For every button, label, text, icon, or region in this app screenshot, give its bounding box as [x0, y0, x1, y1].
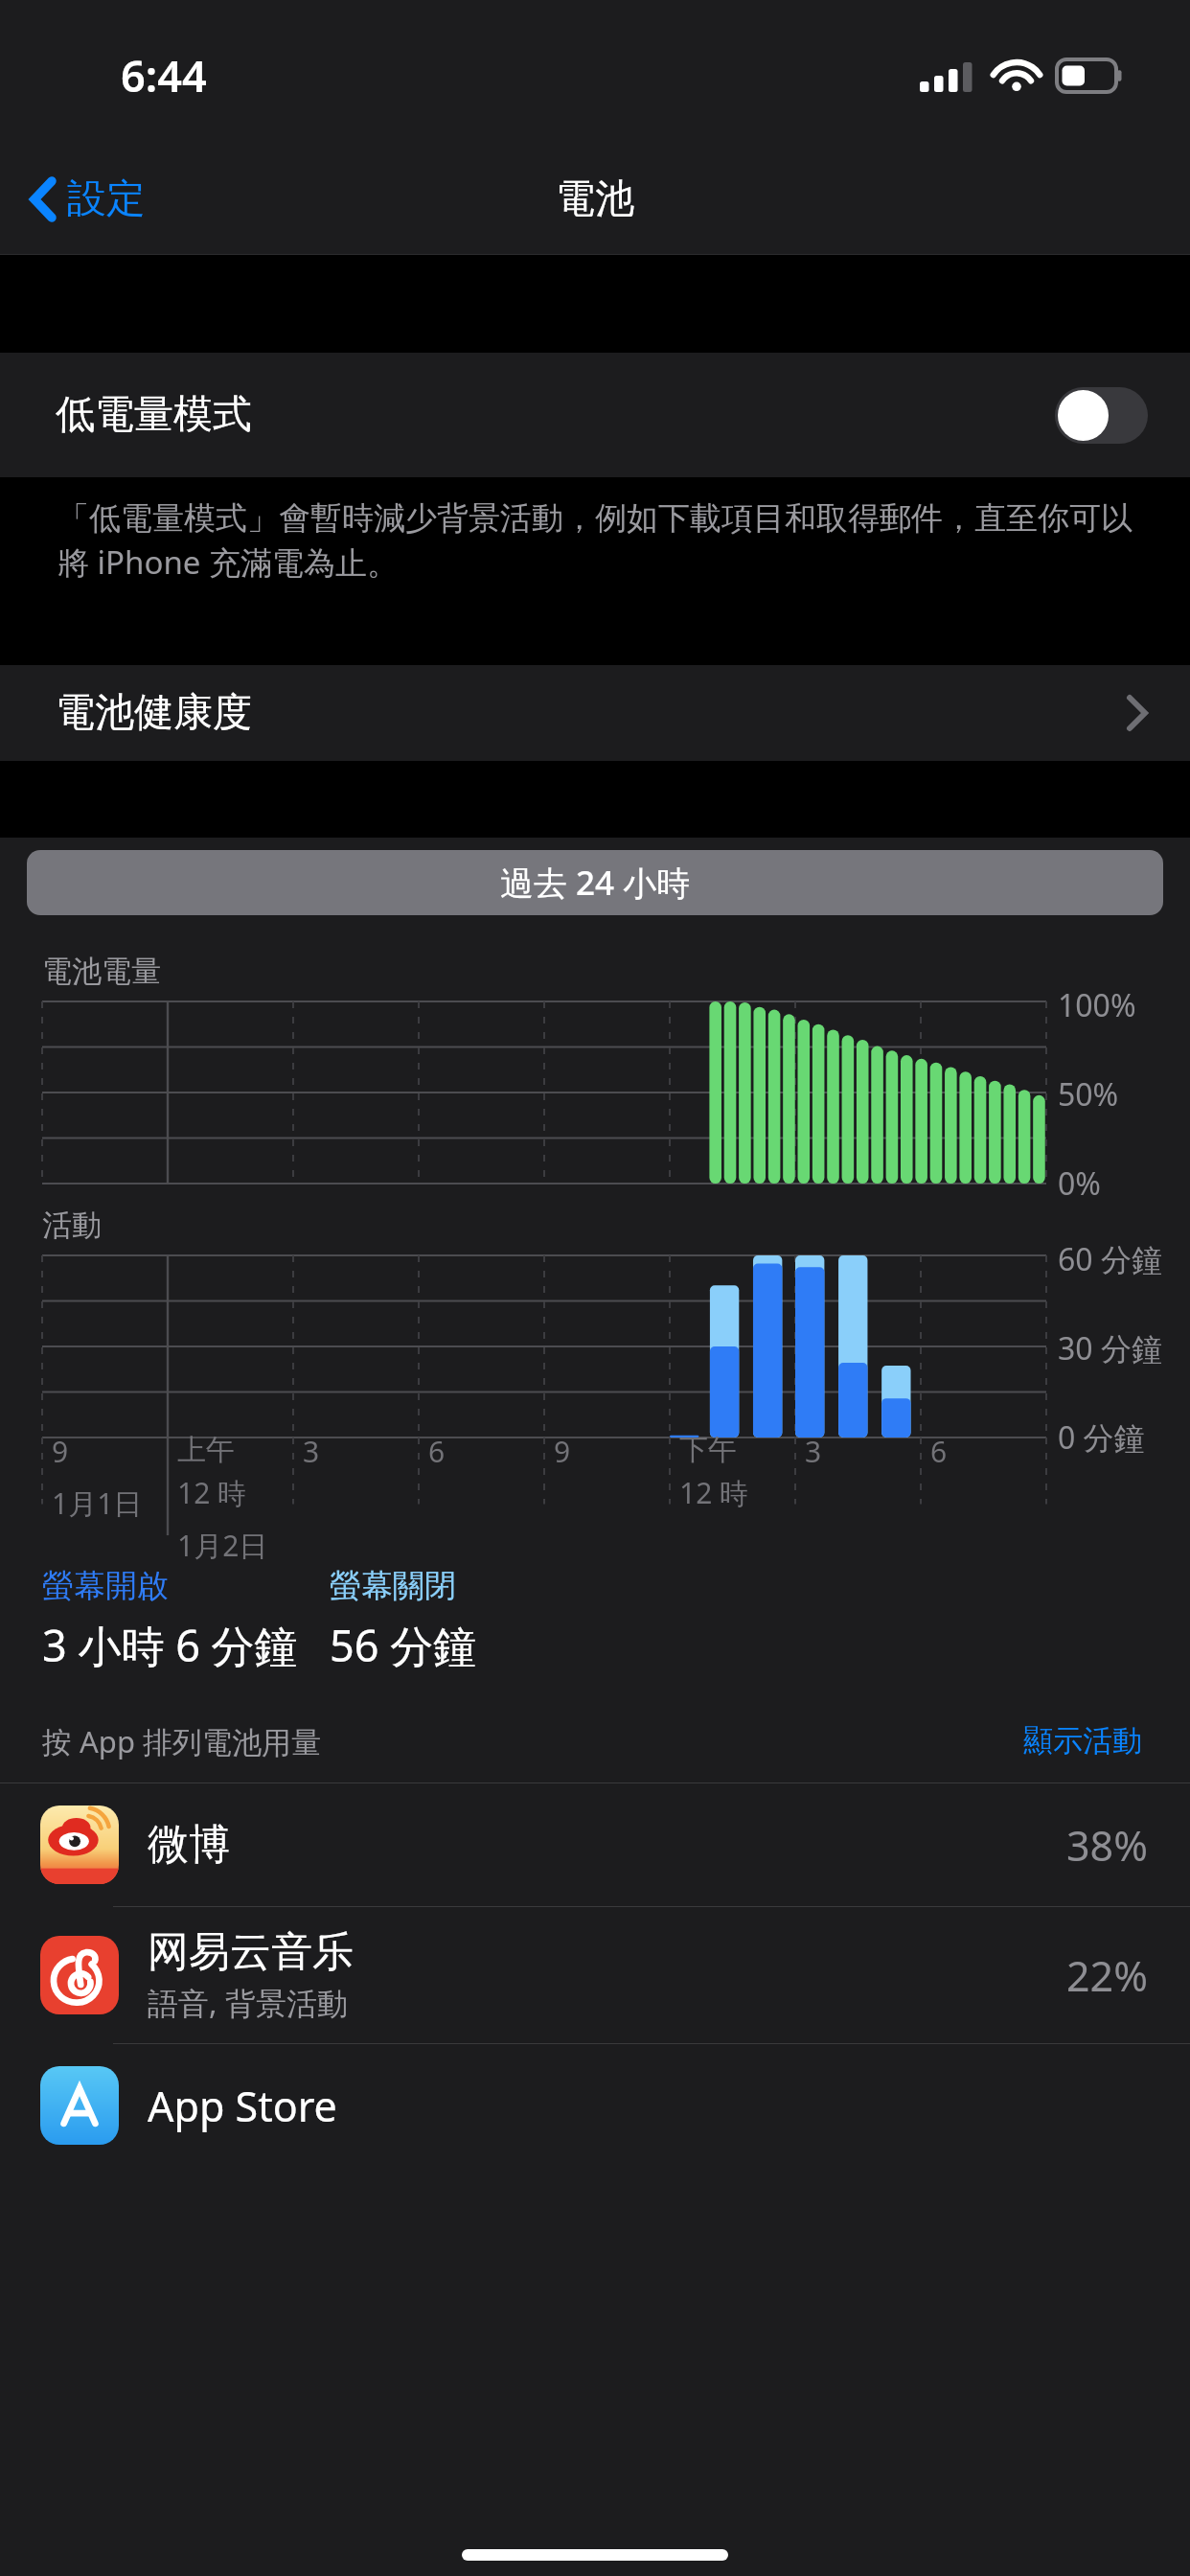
staticText: 9 — [52, 1432, 69, 1471]
staticText: 9 — [554, 1432, 571, 1471]
staticText: 6 — [428, 1432, 446, 1471]
staticText: 100% — [1058, 984, 1136, 1026]
button[interactable]: 設定 — [0, 163, 165, 236]
staticText: 56 分鐘 — [330, 1616, 477, 1674]
staticText: 0% — [1058, 1162, 1101, 1205]
button[interactable]: 微博 — [0, 1783, 1190, 1906]
staticText: 螢幕關閉 — [330, 1566, 456, 1606]
staticText: 過去 24 小時 — [500, 860, 691, 906]
staticText: 50% — [1058, 1073, 1119, 1115]
staticText: 上午 12 時 — [177, 1432, 247, 1511]
staticText: 1月1日 — [52, 1483, 143, 1523]
staticText: 60 分鐘 — [1058, 1238, 1162, 1280]
button[interactable]: 顯示活動 — [1018, 1716, 1148, 1765]
staticText: 電池健康度 — [56, 688, 252, 738]
staticText: 活動 — [42, 1207, 102, 1244]
staticText: 网易云音乐 — [148, 1926, 354, 1978]
staticText: 6 — [930, 1432, 948, 1471]
staticText: 22% — [1066, 1947, 1148, 2004]
staticText: 微博 — [148, 1819, 230, 1871]
staticText: 0 分鐘 — [1058, 1416, 1145, 1459]
staticText: 電池電量 — [42, 953, 161, 990]
staticText: 螢幕開啟 — [42, 1566, 169, 1606]
staticText: 3 小時 6 分鐘 — [42, 1616, 298, 1674]
staticText: 按 App 排列電池用量 — [42, 1721, 322, 1761]
staticText: 低電量模式 — [56, 390, 252, 440]
staticText: 3 — [805, 1432, 822, 1471]
button[interactable]: App Store — [0, 2044, 1190, 2167]
staticText: 「低電量模式」會暫時減少背景活動，例如下載項目和取得郵件，直至你可以將 iPho… — [57, 498, 1138, 584]
staticText: 6:44 — [121, 46, 207, 104]
staticText: 設定 — [67, 174, 146, 224]
button[interactable]: 過去 24 小時 — [27, 850, 1163, 915]
staticText: 1月2日 — [177, 1526, 268, 1565]
staticText: 30 分鐘 — [1058, 1327, 1162, 1369]
button[interactable]: 電池健康度 — [0, 665, 1190, 761]
staticText: 3 — [303, 1432, 320, 1471]
button[interactable]: 低電量模式 — [1055, 387, 1148, 444]
staticText: 下午 12 時 — [679, 1432, 749, 1511]
staticText: 語音, 背景活動 — [148, 1982, 348, 2024]
button[interactable]: 低電量模式 — [0, 353, 1190, 477]
staticText: 電池 — [556, 174, 634, 224]
staticText: 顯示活動 — [1023, 1722, 1142, 1759]
staticText: App Store — [148, 2078, 337, 2134]
staticText: 38% — [1066, 1817, 1148, 1874]
button[interactable]: 网易云音乐 — [0, 1907, 1190, 2043]
